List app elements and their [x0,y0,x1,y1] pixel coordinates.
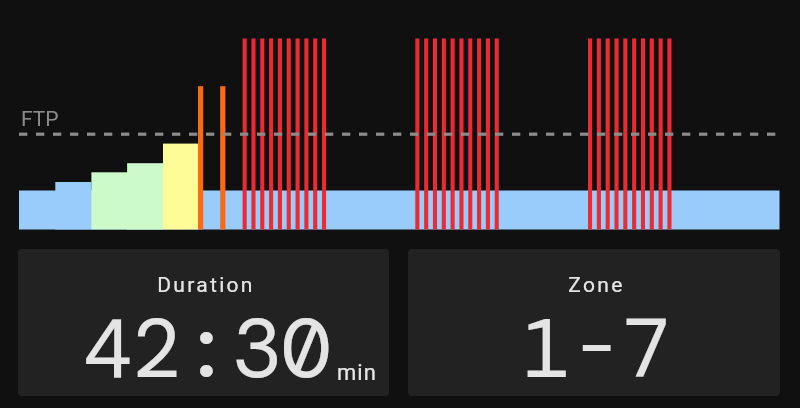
staticText: Zone [568,273,625,298]
staticText: 42:30 [82,295,331,396]
staticText: Duration [157,273,255,298]
button[interactable]: Duration [18,249,389,396]
staticText: 1-7 [522,295,672,396]
button[interactable]: Zone [408,249,780,396]
staticText: FTP [21,107,59,132]
staticText: min [337,360,377,386]
